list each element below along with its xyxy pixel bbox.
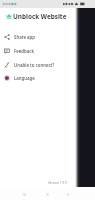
- staticText: Share app: [14, 34, 36, 40]
- staticText: Version 1.9.9: [48, 181, 67, 185]
- staticText: Unblock Website: [13, 12, 67, 21]
- button[interactable]: Share app: [0, 30, 75, 44]
- button[interactable]: Feedback: [0, 44, 75, 58]
- button[interactable]: Unable to connect?: [0, 58, 75, 72]
- staticText: Language: [14, 75, 35, 81]
- button[interactable]: Language: [0, 71, 75, 85]
- staticText: Unable to connect?: [14, 62, 55, 68]
- button[interactable]: Back: [62, 189, 72, 199]
- staticText: Feedback: [14, 48, 34, 54]
- button[interactable]: Recents: [19, 189, 29, 199]
- button[interactable]: Home: [42, 189, 52, 199]
